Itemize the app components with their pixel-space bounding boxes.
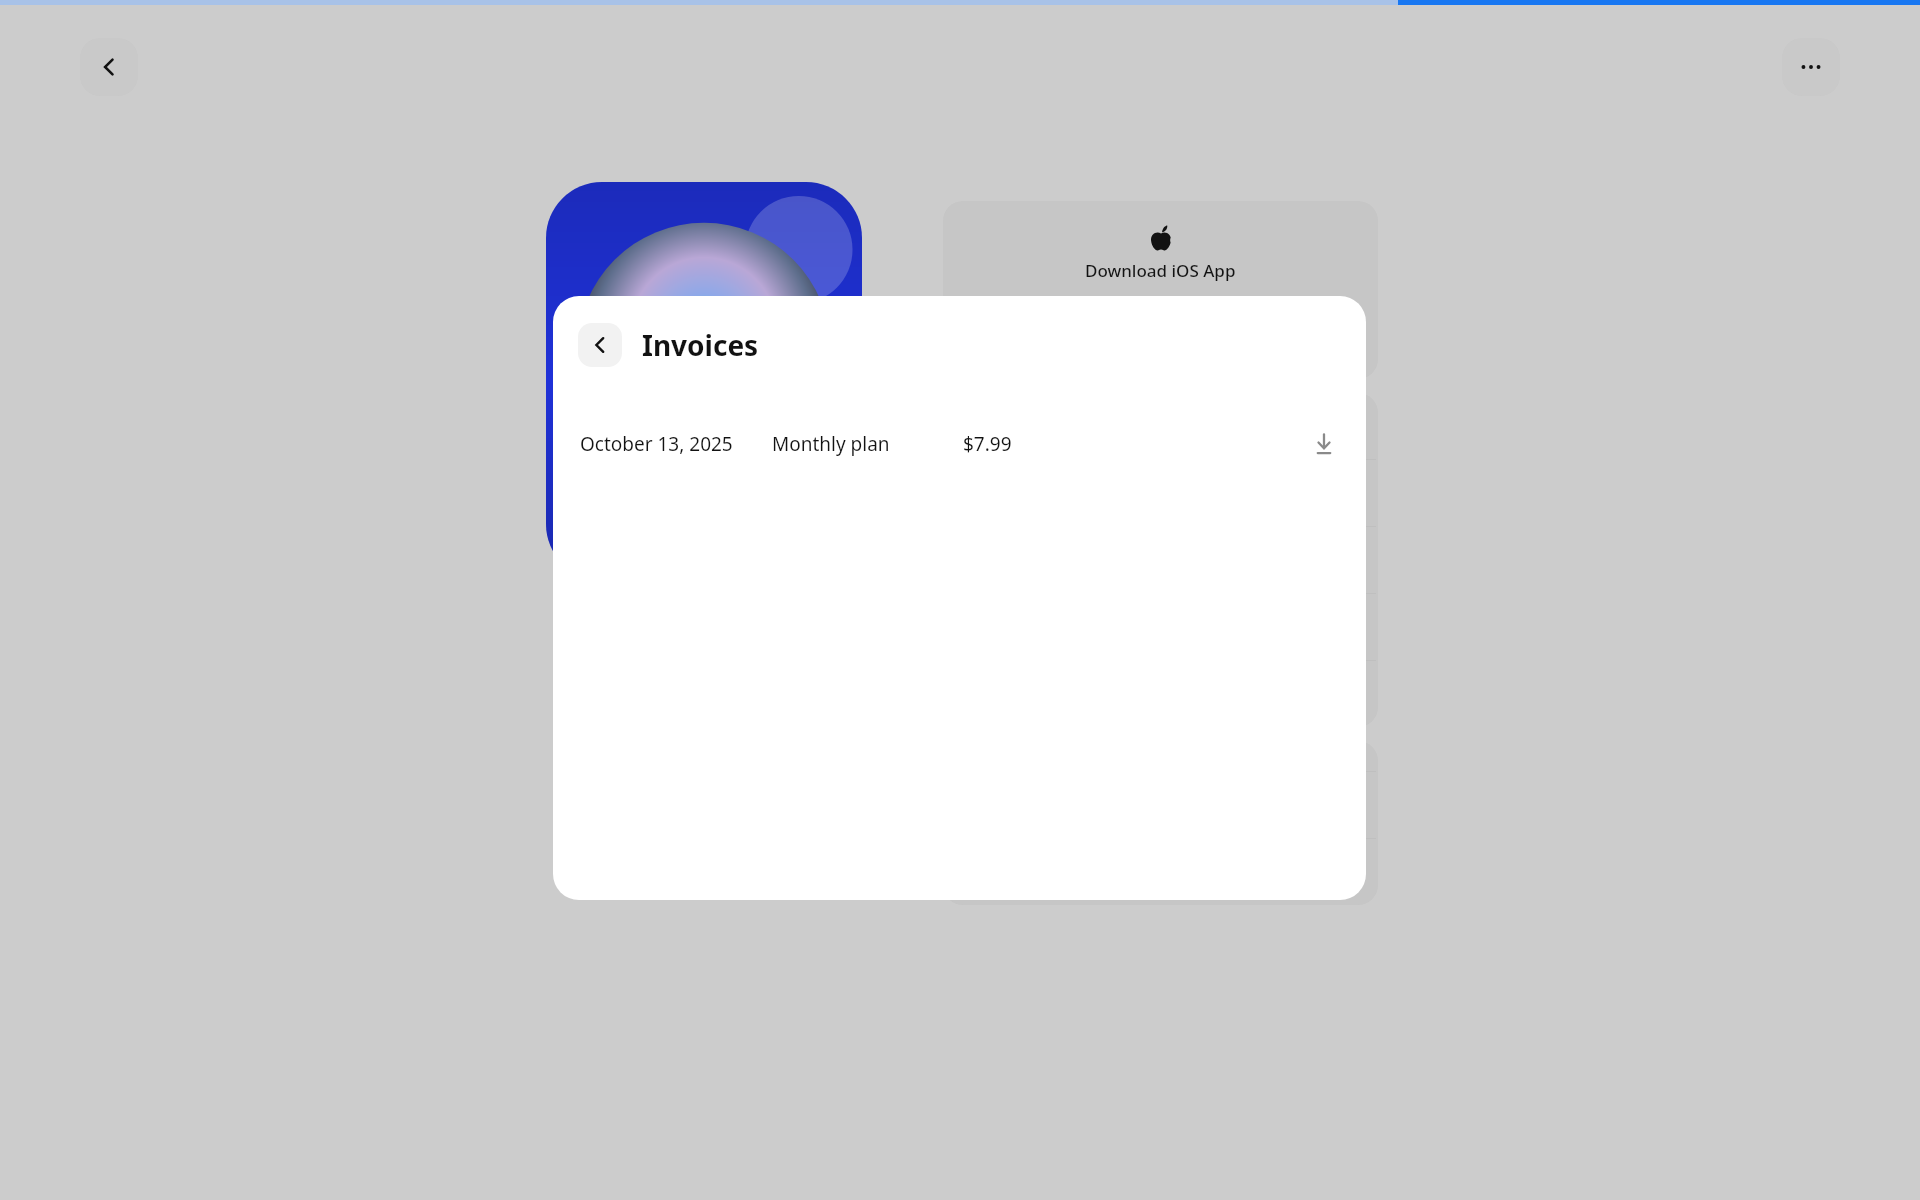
staticText: October 13, 2025 bbox=[580, 431, 772, 457]
button[interactable]: Download iOS App bbox=[943, 201, 1378, 379]
button[interactable]: Privacy Policy bbox=[943, 772, 1378, 838]
staticText: Download iOS App bbox=[1085, 259, 1236, 282]
button[interactable]: More options bbox=[1782, 38, 1840, 96]
button[interactable] bbox=[943, 460, 1378, 526]
button[interactable]: Back bbox=[578, 323, 622, 367]
button[interactable] bbox=[943, 527, 1378, 593]
button[interactable]: Back bbox=[80, 38, 138, 96]
button[interactable] bbox=[943, 661, 1378, 727]
staticText: $7.99 bbox=[963, 431, 1012, 457]
button[interactable] bbox=[943, 393, 1378, 459]
button[interactable]: October 13, 2025 bbox=[553, 414, 1366, 474]
staticText: Invoices bbox=[642, 326, 759, 364]
button[interactable]: Third-Party Licenses bbox=[943, 839, 1378, 905]
button[interactable] bbox=[943, 594, 1378, 660]
button[interactable]: Download invoice bbox=[1307, 427, 1341, 461]
staticText: Monthly plan bbox=[772, 431, 963, 457]
